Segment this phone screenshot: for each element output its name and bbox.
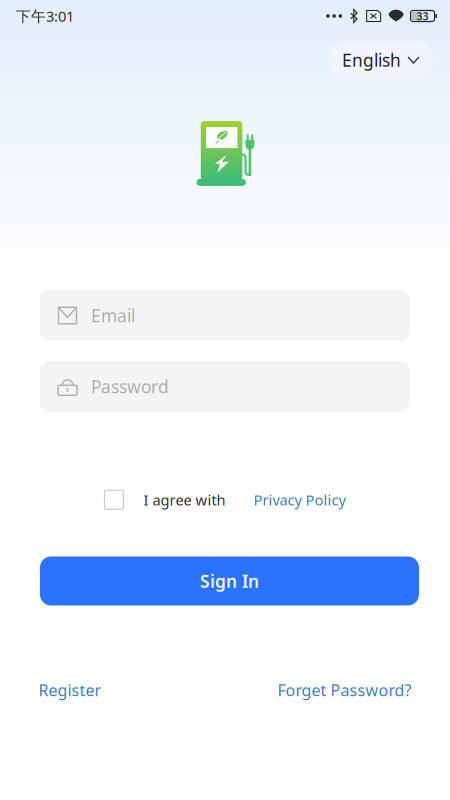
button[interactable]: English	[328, 40, 433, 80]
button[interactable]: Email	[40, 290, 410, 341]
button[interactable]: I agree with the Privacy Policy	[104, 490, 123, 509]
button[interactable]: Password	[40, 361, 410, 412]
button[interactable]: Privacy Policy	[253, 490, 345, 509]
button[interactable]: Forget Password?	[277, 679, 411, 701]
staticText: Privacy Policy	[253, 490, 345, 509]
staticText: 下午3:01	[16, 6, 74, 26]
staticText: 33	[417, 9, 429, 23]
staticText: Sign In	[200, 569, 259, 592]
button[interactable]: Register	[38, 679, 101, 701]
staticText: English	[342, 48, 401, 71]
staticText: Forget Password?	[277, 679, 411, 701]
staticText: I agree with	[143, 490, 225, 509]
button[interactable]: Sign In	[40, 556, 419, 605]
staticText: Password	[91, 375, 169, 398]
staticText: Email	[91, 304, 135, 327]
staticText: Register	[38, 679, 101, 701]
